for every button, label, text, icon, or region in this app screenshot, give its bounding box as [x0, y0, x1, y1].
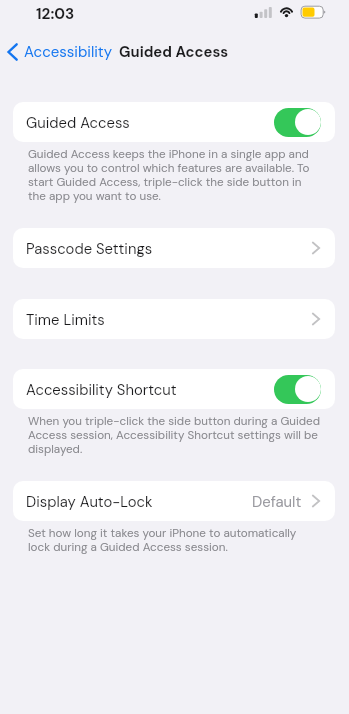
staticText: Guided Access keeps the iPhone in a sing…	[28, 148, 321, 204]
staticText: Display Auto-Lock	[26, 492, 153, 511]
staticText: Accessibility	[24, 42, 113, 62]
button[interactable]: Guided Access	[13, 102, 335, 142]
button[interactable]: Display Auto-Lock	[13, 481, 335, 521]
staticText: Guided Access	[26, 113, 130, 132]
staticText: Accessibility Shortcut	[26, 380, 177, 399]
staticText: 12:03	[36, 4, 75, 24]
staticText: Default	[252, 492, 302, 511]
staticText: When you triple-click the side button du…	[28, 415, 321, 457]
staticText: Passcode Settings	[26, 239, 153, 258]
button[interactable]: Accessibility	[5, 39, 115, 65]
button[interactable]: Time Limits	[13, 299, 335, 339]
button[interactable]: Toggle on	[274, 108, 321, 137]
button[interactable]: Accessibility Shortcut	[13, 369, 335, 409]
button[interactable]: Toggle on	[274, 375, 321, 404]
staticText: Set how long it takes your iPhone to aut…	[28, 527, 321, 555]
staticText: Time Limits	[26, 310, 105, 329]
button[interactable]: Passcode Settings	[13, 228, 335, 268]
staticText: Guided Access	[119, 42, 229, 61]
